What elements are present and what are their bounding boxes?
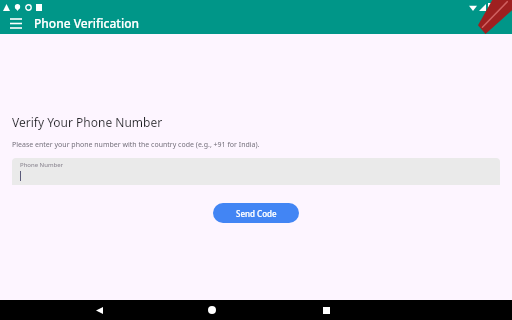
button[interactable]: Phone Number (12, 158, 500, 185)
staticText: Verify Your Phone Number (12, 114, 163, 130)
button[interactable]: Send Code (213, 203, 299, 223)
button[interactable]: Open navigation menu (6, 13, 26, 33)
button[interactable]: Recent apps (312, 300, 340, 320)
staticText: Phone Verification (34, 15, 140, 31)
button[interactable]: Back (85, 300, 113, 320)
staticText: Please enter your phone number with the … (12, 140, 260, 150)
staticText: Phone Number (20, 161, 64, 169)
staticText: Send Code (236, 208, 277, 219)
staticText: 12:01 (494, 3, 510, 11)
button[interactable]: Home (198, 300, 226, 320)
